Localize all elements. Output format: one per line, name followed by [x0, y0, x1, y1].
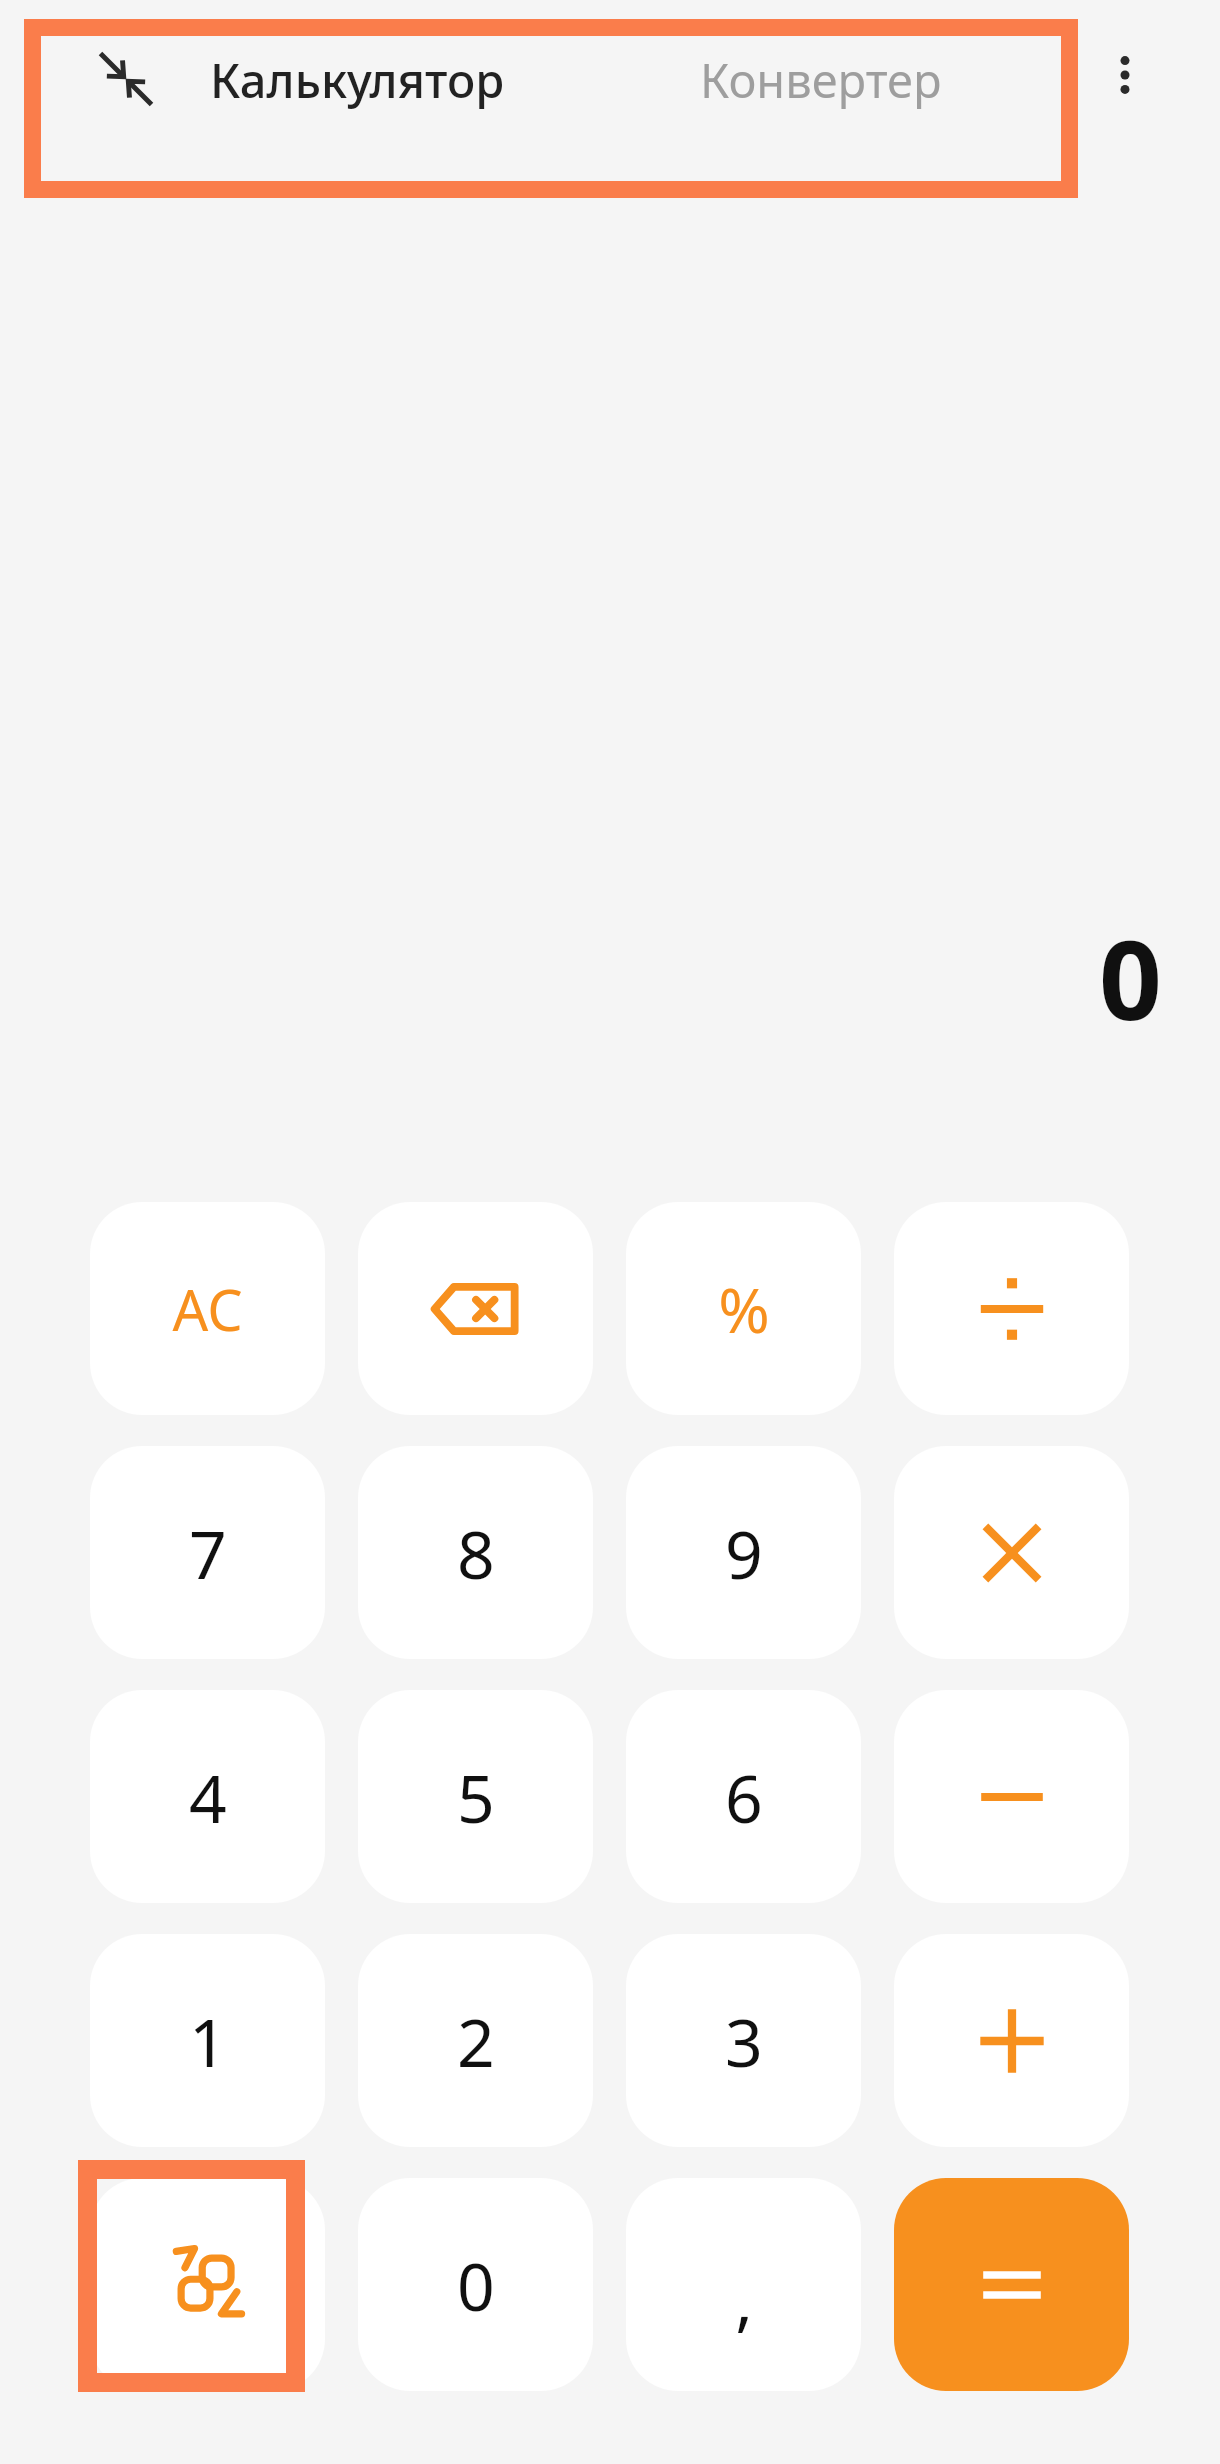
button[interactable]: Backspace — [358, 1202, 593, 1415]
staticText: 3 — [725, 1996, 763, 2086]
button[interactable]: % — [626, 1202, 861, 1415]
staticText: 5 — [457, 1752, 495, 1842]
staticText: Конвертер — [700, 48, 942, 112]
staticText: % — [718, 1267, 770, 1351]
button[interactable]: 1 — [90, 1934, 325, 2147]
button[interactable]: 8 — [358, 1446, 593, 1659]
staticText: 0 — [457, 2240, 495, 2330]
button[interactable]: Калькулятор — [210, 40, 505, 120]
button[interactable]: , — [626, 2178, 861, 2391]
button[interactable]: Equals — [894, 2178, 1129, 2391]
staticText: 2 — [457, 1996, 495, 2086]
button[interactable]: AC — [90, 1202, 325, 1415]
staticText: Калькулятор — [210, 48, 505, 112]
button[interactable]: 0 — [358, 2178, 593, 2391]
staticText: AC — [172, 1271, 243, 1347]
button[interactable]: Plus — [894, 1934, 1129, 2147]
button[interactable]: More options — [1080, 30, 1170, 120]
button[interactable]: 4 — [90, 1690, 325, 1903]
button[interactable]: Multiply — [894, 1446, 1129, 1659]
button[interactable]: Collapse — [85, 38, 167, 120]
button[interactable]: 3 — [626, 1934, 861, 2147]
staticText: 7 — [189, 1508, 227, 1598]
staticText: 8 — [457, 1508, 495, 1598]
staticText: 4 — [189, 1752, 227, 1842]
button[interactable]: Scientific — [90, 2178, 325, 2391]
staticText: 0 — [1099, 902, 1162, 1052]
staticText: 9 — [725, 1508, 763, 1598]
button[interactable]: Minus — [894, 1690, 1129, 1903]
button[interactable]: 5 — [358, 1690, 593, 1903]
button[interactable]: 2 — [358, 1934, 593, 2147]
button[interactable]: 7 — [90, 1446, 325, 1659]
staticText: , — [735, 2254, 753, 2344]
staticText: 1 — [189, 1996, 227, 2086]
button[interactable]: 9 — [626, 1446, 861, 1659]
staticText: 6 — [725, 1752, 763, 1842]
button[interactable]: Divide — [894, 1202, 1129, 1415]
button[interactable]: 6 — [626, 1690, 861, 1903]
button[interactable]: Конвертер — [700, 40, 942, 120]
